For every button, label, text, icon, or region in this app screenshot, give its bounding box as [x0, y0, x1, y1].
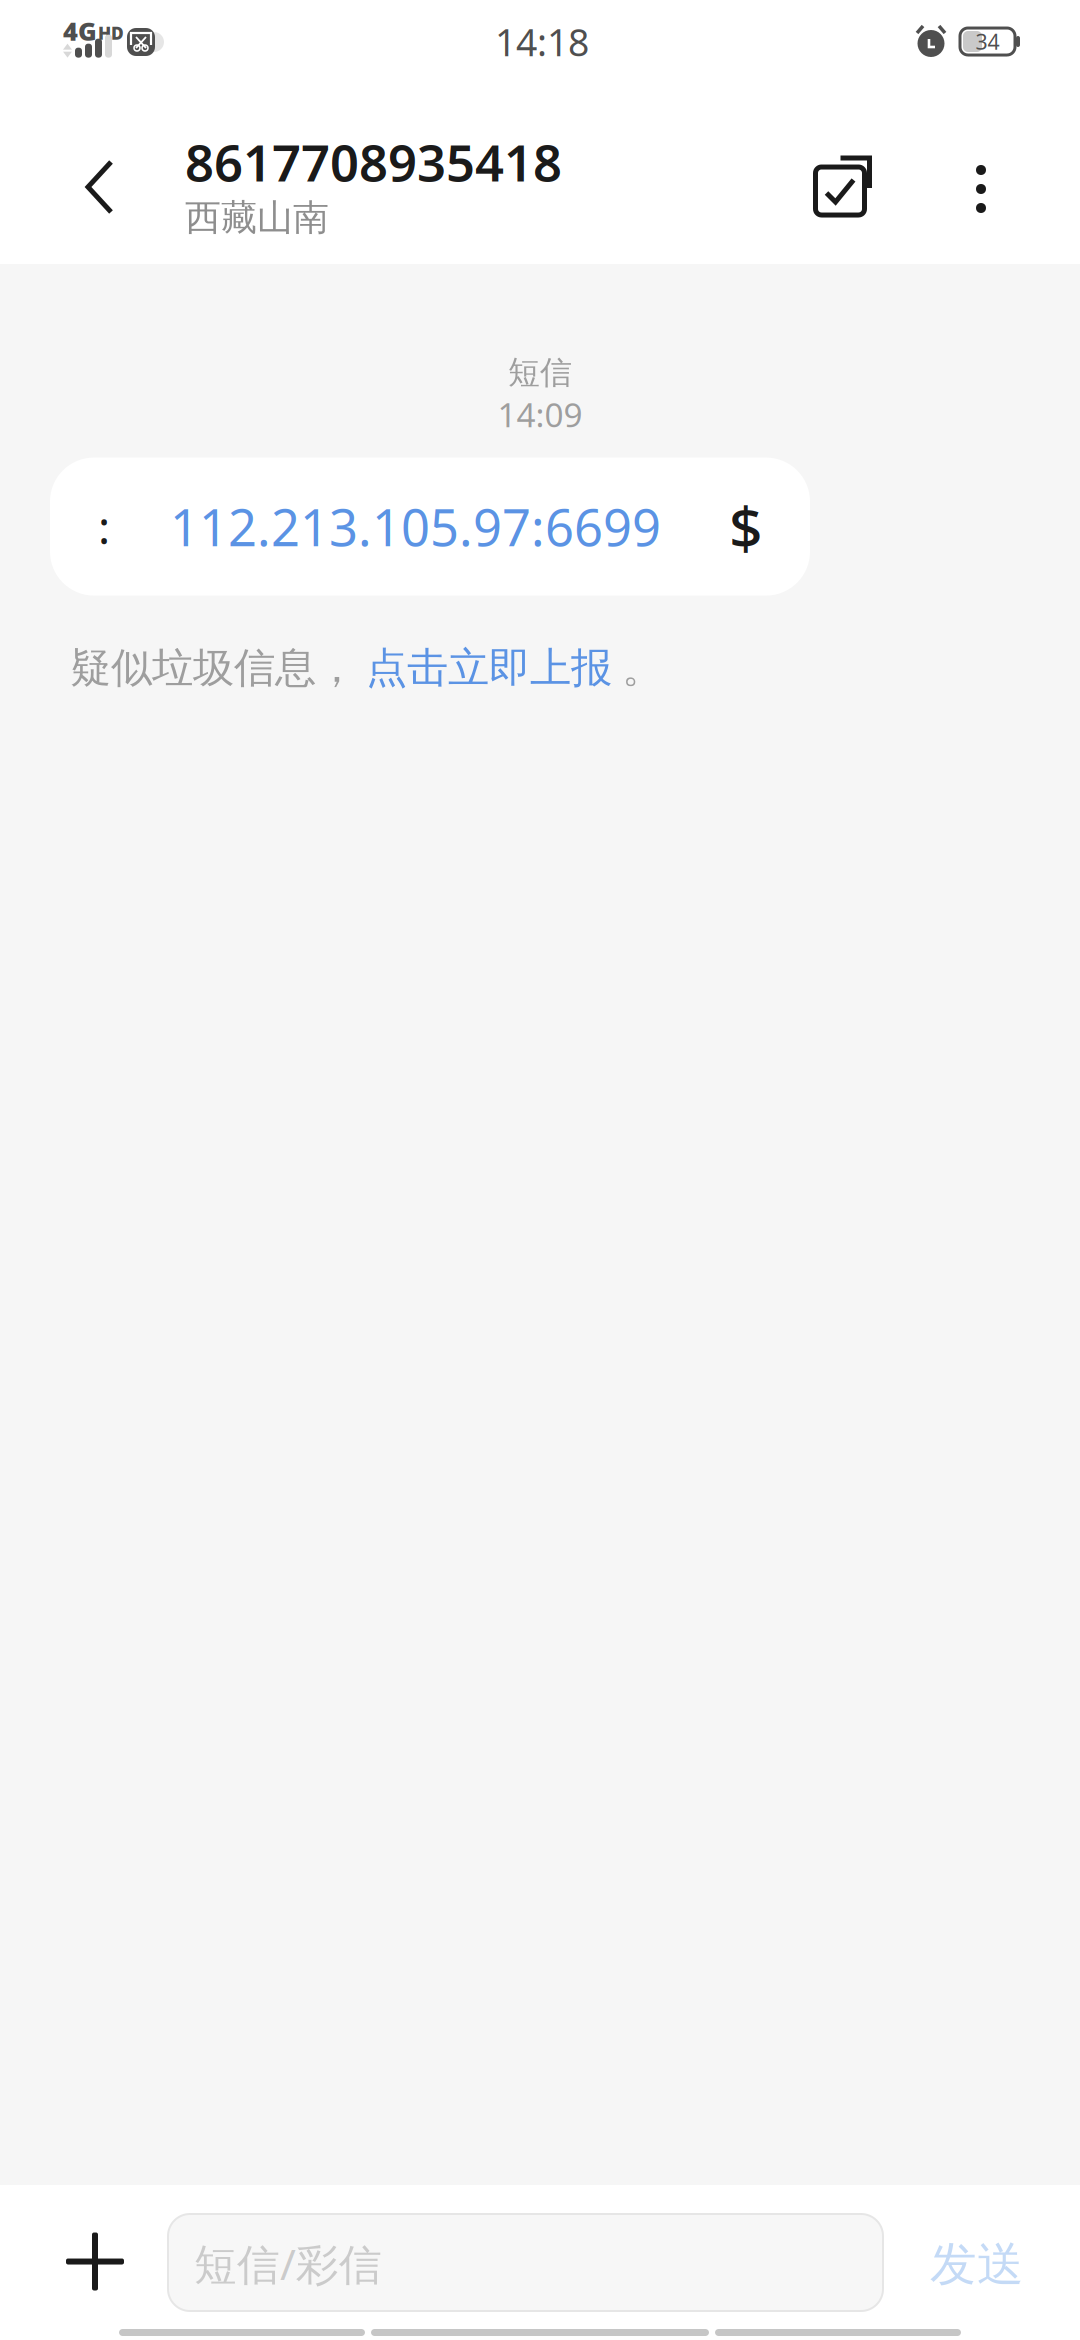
staticText: 14:09 — [497, 392, 582, 437]
button[interactable]: 点击立即上报 — [357, 643, 612, 693]
button[interactable]: 短信/彩信 — [168, 2185, 883, 2311]
staticText: 34 — [975, 27, 999, 56]
staticText: 112.213.105.97:6699 — [170, 493, 661, 560]
staticText: 14:18 — [495, 17, 589, 67]
staticText: 短信/彩信 — [194, 2235, 382, 2292]
staticText: HD — [98, 22, 124, 45]
staticText: 西藏山南 — [185, 195, 329, 240]
button[interactable]: More options — [905, 92, 1027, 264]
staticText: 4G — [63, 14, 97, 48]
staticText: 疑似垃圾信息， — [70, 643, 357, 693]
staticText: $ — [729, 488, 763, 565]
staticText: 点击立即上报 — [366, 643, 612, 693]
staticText: 8617708935418 — [185, 128, 562, 195]
button[interactable]: 发送 — [906, 2185, 1080, 2327]
staticText: 。 — [622, 643, 663, 693]
button[interactable]: Select messages — [783, 92, 905, 264]
staticText: : — [98, 496, 110, 557]
staticText: 发送 — [930, 2236, 1024, 2293]
button[interactable]: Back — [41, 92, 159, 264]
button[interactable]: Add attachment — [34, 2185, 168, 2324]
staticText: 短信 — [508, 353, 572, 392]
